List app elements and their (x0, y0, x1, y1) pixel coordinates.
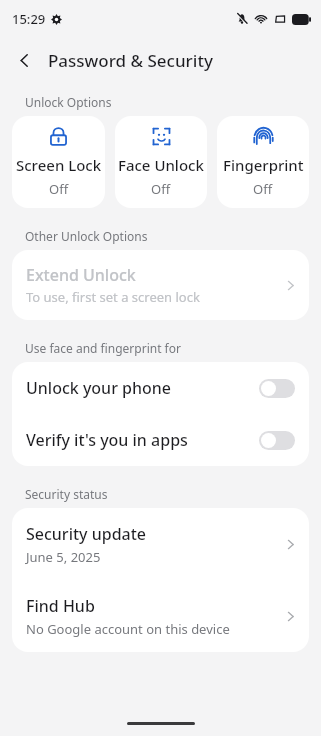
button[interactable]: Extend Unlock (12, 250, 309, 320)
staticText: Unlock Options (25, 94, 112, 110)
staticText: Other Unlock Options (25, 228, 148, 244)
staticText: Off (49, 180, 69, 198)
staticText: Off (253, 180, 273, 198)
button[interactable]: Security update (12, 508, 309, 580)
button[interactable]: Screen Lock (12, 116, 105, 208)
staticText: Find Hub (26, 595, 95, 617)
button[interactable]: Face Unlock (115, 116, 207, 208)
staticText: To use, first set a screen lock (26, 288, 200, 306)
staticText: Unlock your phone (26, 377, 259, 399)
button[interactable]: Unlock your phone (12, 362, 309, 414)
button[interactable]: Verify it's you in apps (12, 414, 309, 466)
staticText: Security status (25, 486, 108, 502)
staticText: Screen Lock (16, 155, 102, 175)
staticText: No Google account on this device (26, 620, 230, 638)
staticText: Verify it's you in apps (26, 429, 259, 451)
staticText: Security update (26, 523, 147, 545)
button[interactable]: Back (6, 42, 42, 78)
button[interactable]: Fingerprint (217, 116, 309, 208)
staticText: Extend Unlock (26, 264, 136, 286)
button[interactable]: Find Hub (12, 580, 309, 652)
staticText: 15:29 (12, 10, 46, 28)
staticText: Use face and fingerprint for (25, 340, 181, 356)
staticText: Password & Security (48, 49, 213, 72)
staticText: Face Unlock (118, 155, 204, 175)
staticText: Off (151, 180, 171, 198)
staticText: June 5, 2025 (26, 548, 101, 566)
staticText: Fingerprint (223, 155, 304, 175)
